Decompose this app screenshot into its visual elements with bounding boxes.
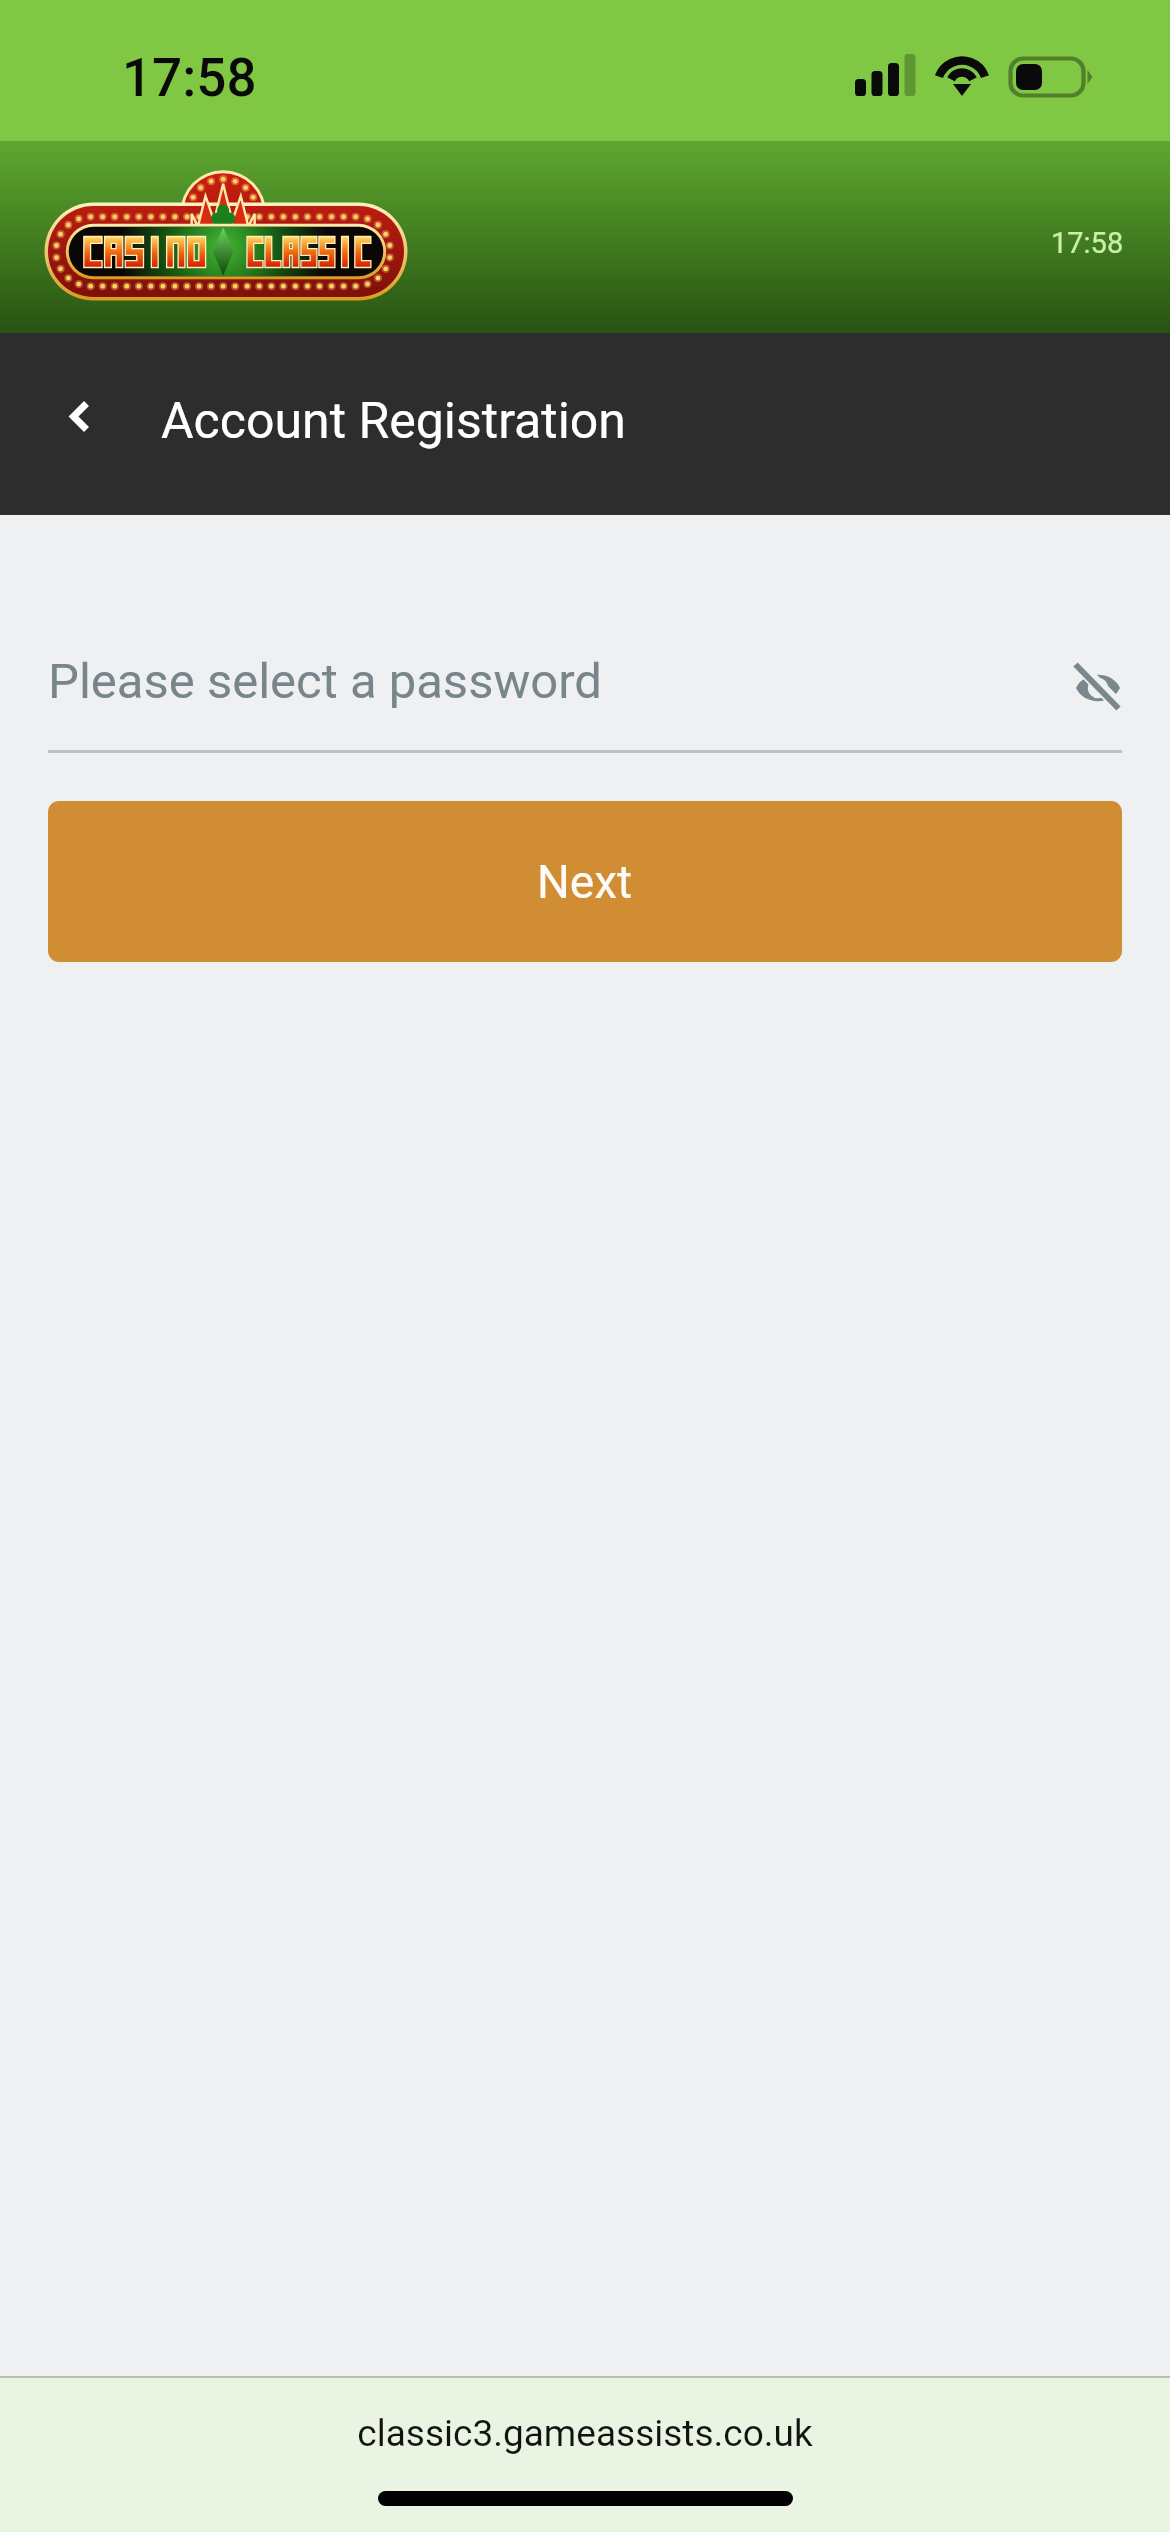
button[interactable]: Back [27,368,131,480]
staticText: 17:58 [1051,226,1124,260]
staticText: 17:58 [122,47,257,109]
staticText: classic3.gameassists.co.uk [0,2412,1170,2455]
staticText: Next [537,855,633,909]
staticText: Account Registration [161,392,626,451]
staticText: Please select a password [48,653,603,710]
button[interactable]: Show password [1056,644,1140,728]
button[interactable]: Next [48,801,1122,962]
